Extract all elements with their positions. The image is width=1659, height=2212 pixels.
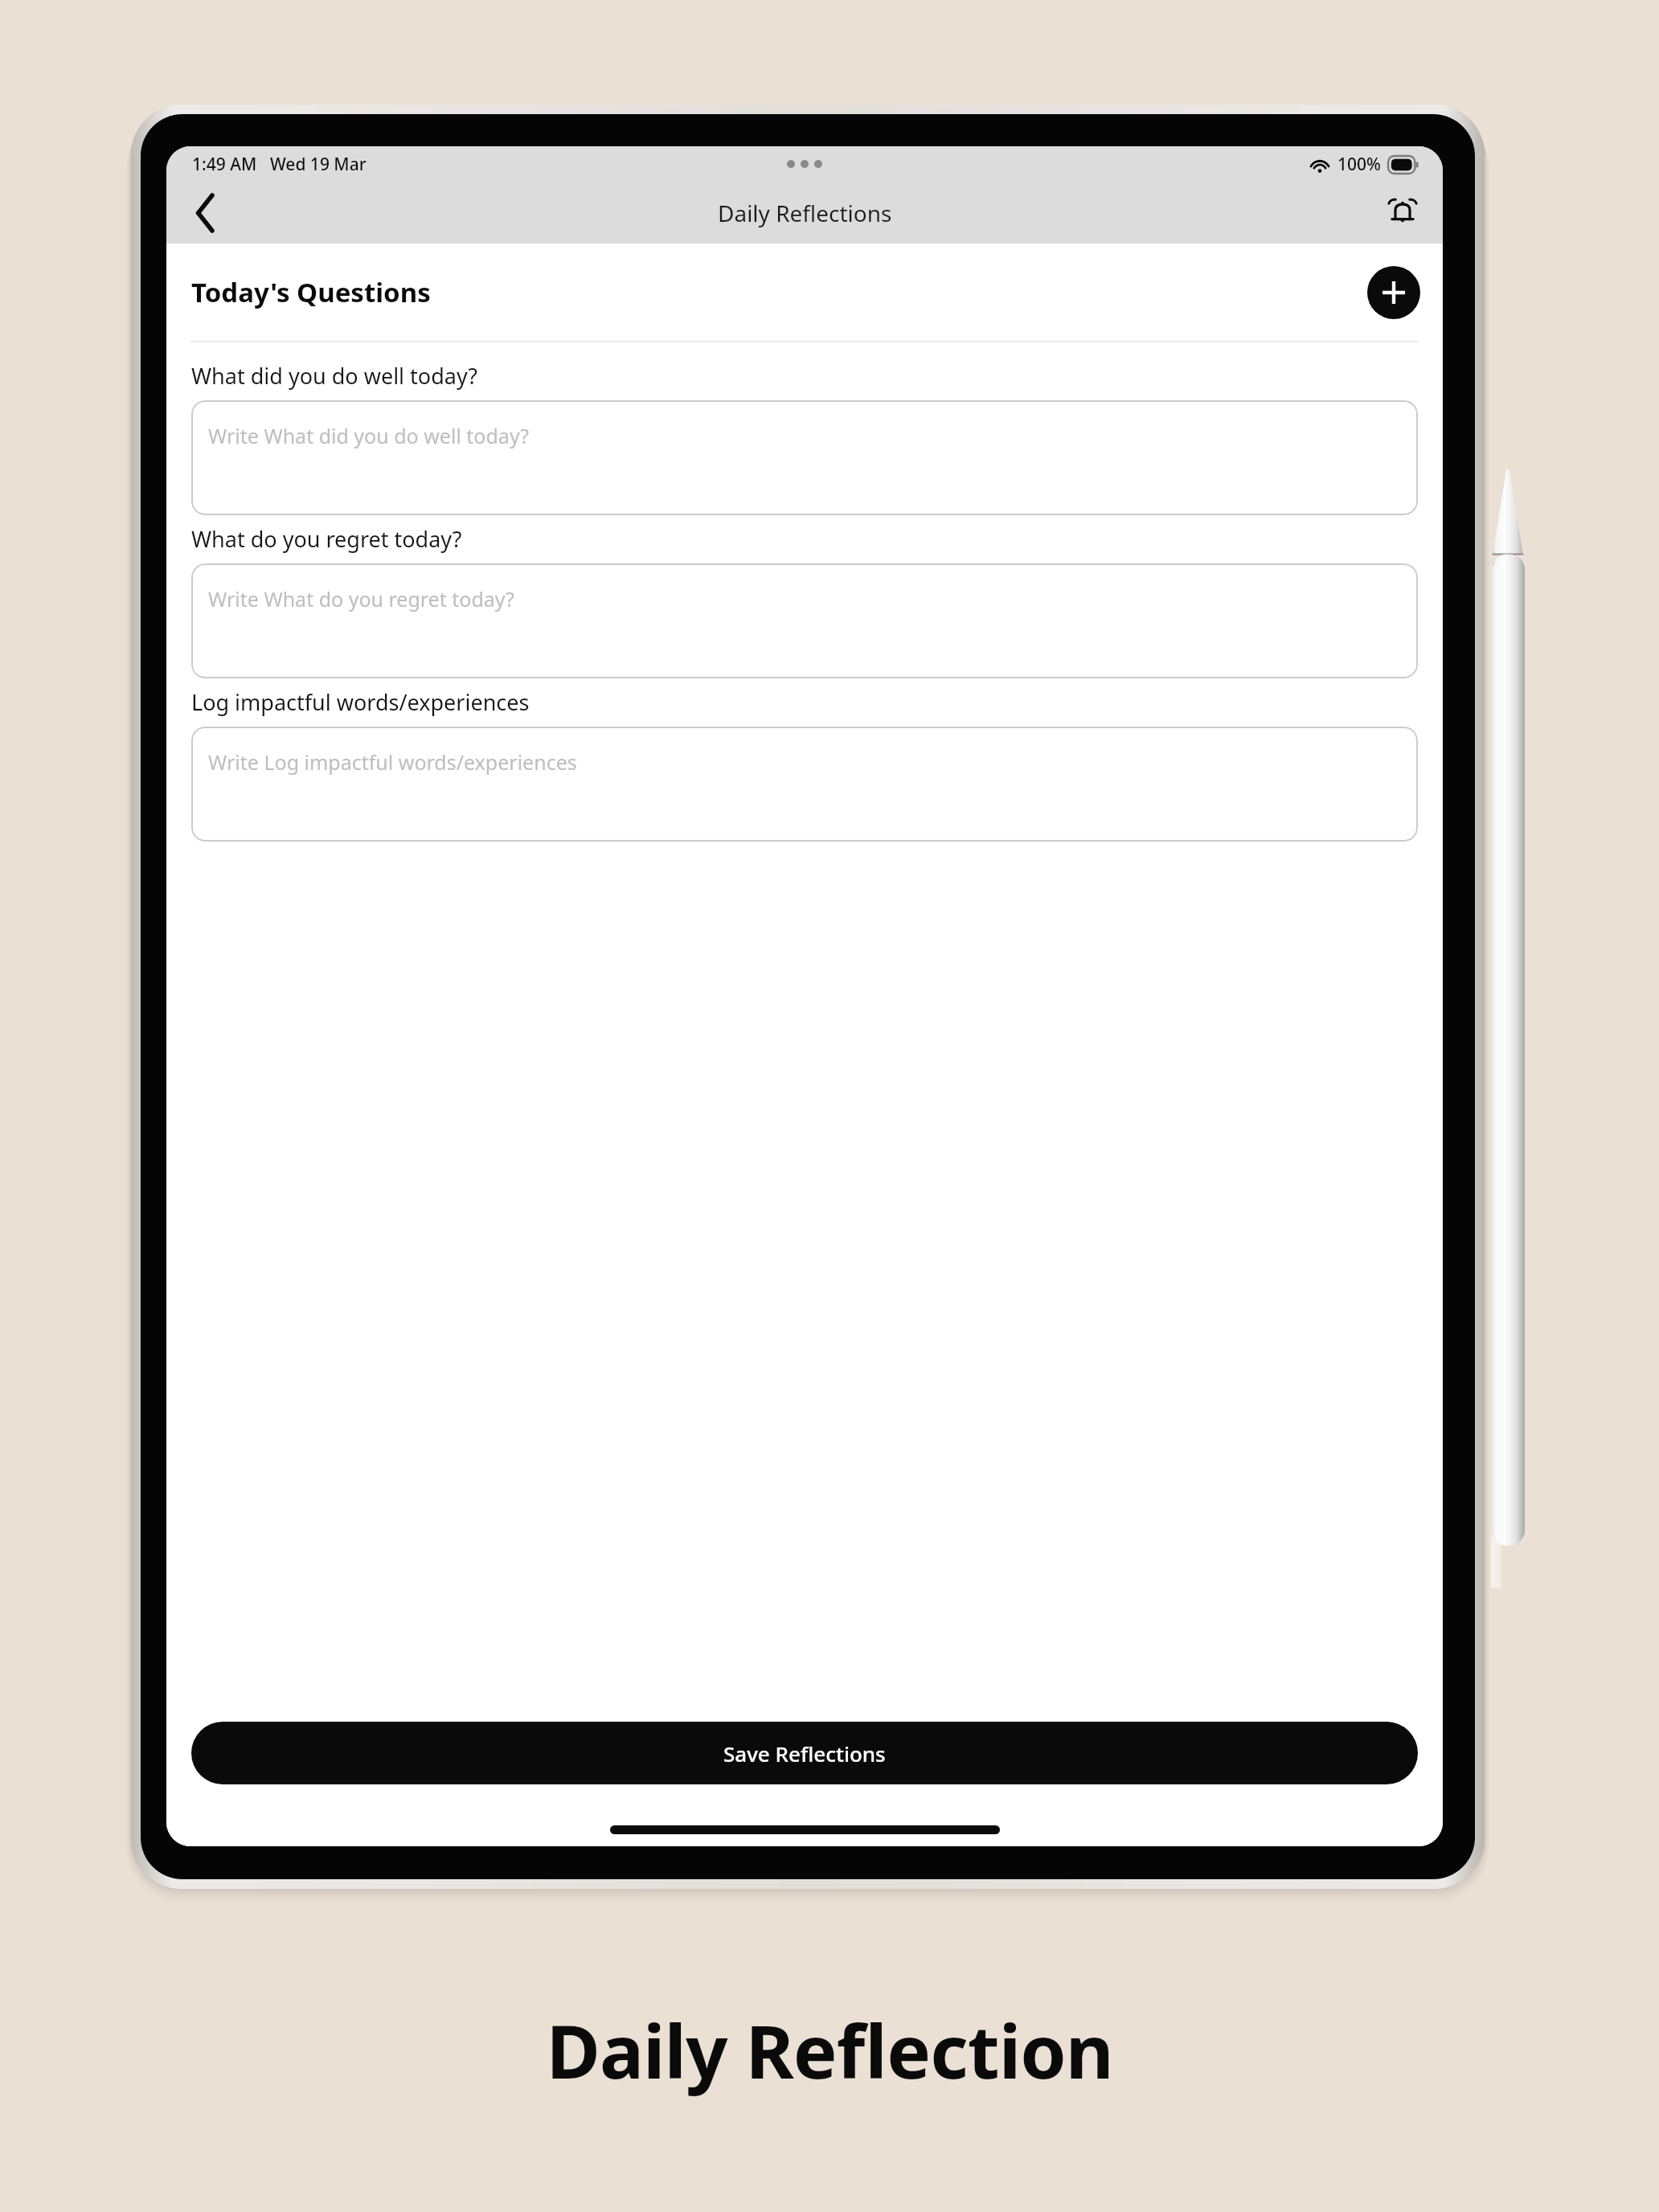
staticText: Today's Questions <box>191 274 431 310</box>
staticText: Daily Reflection <box>0 2000 1659 2100</box>
button[interactable]: Write What did you do well today? <box>191 400 1418 515</box>
staticText: Wed 19 Mar <box>270 153 367 176</box>
button[interactable]: Write Log impactful words/experiences <box>191 727 1418 842</box>
staticText: What do you regret today? <box>191 524 462 554</box>
staticText: Daily Reflections <box>718 198 892 228</box>
staticText: 1:49 AM <box>192 153 257 176</box>
staticText: Save Reflections <box>723 1739 886 1768</box>
button[interactable]: Notifications <box>1374 184 1432 242</box>
staticText: Write What did you do well today? <box>208 422 529 449</box>
staticText: 100% <box>1337 153 1381 176</box>
staticText: What did you do well today? <box>191 361 477 391</box>
button[interactable]: Back <box>176 184 234 242</box>
button[interactable]: Add question <box>1367 266 1420 319</box>
staticText: Write What do you regret today? <box>208 585 514 612</box>
button[interactable]: Save Reflections <box>191 1722 1418 1784</box>
staticText: Write Log impactful words/experiences <box>208 748 577 776</box>
staticText: Log impactful words/experiences <box>191 687 530 717</box>
button[interactable]: Write What do you regret today? <box>191 563 1418 678</box>
